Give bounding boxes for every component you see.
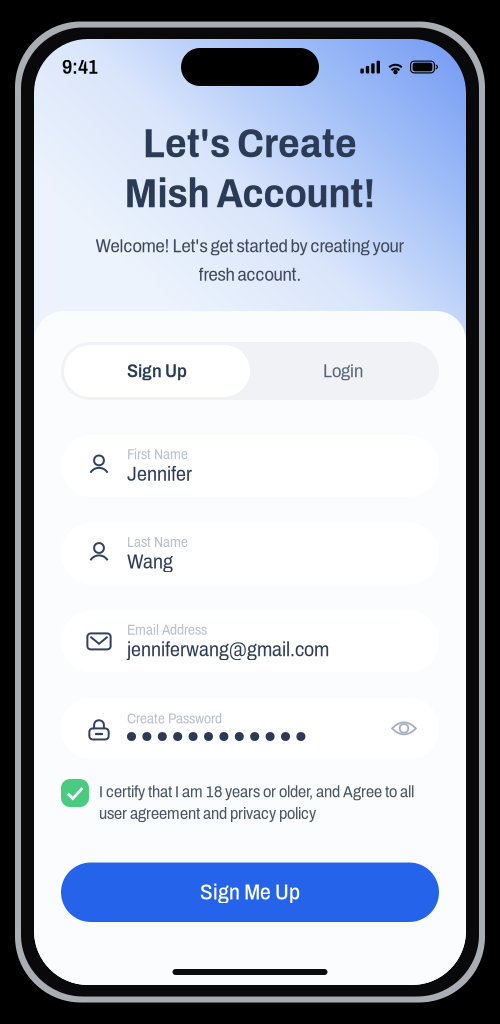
staticText: Last Name: [127, 535, 188, 550]
button[interactable]: Last Name: [61, 523, 439, 585]
button[interactable]: First Name: [61, 435, 439, 497]
staticText: Let's Create: [143, 121, 357, 166]
staticText: I certify that I am 18 years or older, a…: [99, 783, 414, 801]
staticText: Sign Up: [127, 361, 187, 381]
staticText: Sign Me Up: [200, 881, 300, 904]
staticText: First Name: [127, 447, 188, 462]
staticText: Welcome! Let's get started by creating y…: [95, 236, 404, 256]
staticText: 9:41: [62, 56, 98, 78]
button[interactable]: Login: [250, 345, 436, 397]
staticText: jenniferwang@gmail.com: [127, 639, 329, 660]
staticText: Jennifer: [127, 463, 192, 485]
staticText: Email Address: [127, 622, 207, 638]
staticText: Login: [323, 361, 363, 381]
staticText: Create Password: [127, 711, 222, 726]
button[interactable]: Sign Me Up: [61, 862, 439, 922]
staticText: fresh account.: [198, 264, 301, 284]
button[interactable]: Email Address: [61, 610, 439, 672]
button[interactable]: Create Password: [61, 697, 439, 759]
staticText: Wang: [127, 551, 173, 573]
button[interactable]: I certify that I am 18 years or older, a…: [61, 779, 439, 820]
staticText: user agreement and privacy policy: [99, 805, 316, 822]
staticText: Mish Account!: [124, 171, 375, 216]
button[interactable]: Sign Up: [64, 345, 250, 397]
